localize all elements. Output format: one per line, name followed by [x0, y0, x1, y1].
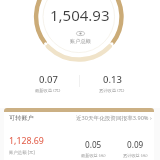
button[interactable]: Toggle balance visibility — [73, 28, 87, 38]
staticText: 0.09 — [127, 139, 144, 150]
staticText: 1,128.69 — [9, 135, 44, 147]
button[interactable]: 可转账户 — [4, 108, 154, 160]
staticText: 账户总额 — [70, 38, 91, 45]
staticText: 可转账户 — [9, 114, 34, 122]
staticText: 0.07 — [39, 73, 58, 86]
staticText: 最新收益 (元) — [81, 153, 106, 159]
staticText: 累计收益 (元) — [123, 153, 148, 159]
staticText: 账户总额 (元) — [9, 149, 35, 155]
staticText: 0.13 — [103, 73, 122, 86]
staticText: 0.05 — [85, 139, 102, 150]
staticText: 累计收益 (元) — [99, 87, 125, 93]
staticText: 近30天年化投资回报率3.90% › — [76, 114, 152, 122]
staticText: 最新收益 (元) — [35, 87, 61, 93]
staticText: 1,504.93 — [50, 5, 110, 25]
